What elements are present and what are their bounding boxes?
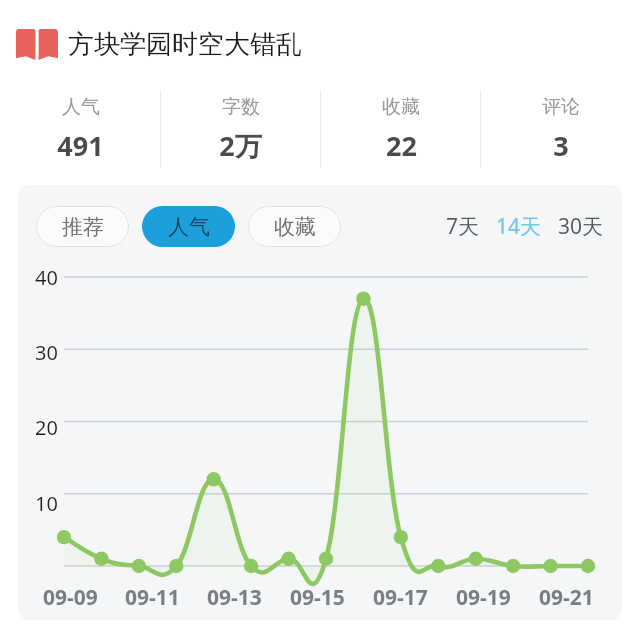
staticText: 人气 (168, 214, 210, 240)
button[interactable]: 字数 (161, 88, 320, 170)
button[interactable]: 收藏 (321, 88, 480, 170)
staticText: 22 (386, 127, 417, 164)
staticText: 评论 (542, 95, 580, 119)
staticText: 09-21 (539, 583, 594, 612)
button[interactable]: 收藏 (248, 206, 341, 247)
button[interactable]: 7天 (444, 206, 482, 247)
button[interactable]: 推荐 (36, 206, 129, 247)
staticText: 20 (35, 414, 58, 441)
staticText: 14天 (496, 212, 542, 241)
staticText: 09-15 (290, 583, 345, 612)
staticText: 3 (553, 127, 569, 164)
staticText: 30 (35, 339, 58, 366)
staticText: 方块学园时空大错乱 (68, 28, 302, 61)
staticText: 09-11 (125, 583, 180, 612)
button[interactable]: 评论 (481, 88, 640, 170)
button[interactable]: 14天 (494, 206, 544, 247)
staticText: 30天 (558, 212, 604, 241)
staticText: 收藏 (382, 95, 420, 119)
staticText: 09-19 (456, 583, 511, 612)
staticText: 7天 (446, 212, 480, 241)
staticText: 10 (35, 490, 58, 517)
staticText: 491 (57, 127, 104, 164)
staticText: 40 (35, 264, 58, 291)
staticText: 09-13 (207, 583, 262, 612)
staticText: 人气 (62, 95, 100, 119)
other: Book (16, 29, 58, 60)
staticText: 收藏 (274, 214, 316, 240)
button[interactable]: 30天 (556, 206, 606, 247)
staticText: 09-09 (43, 583, 98, 612)
button[interactable]: 人气 (0, 88, 160, 170)
staticText: 推荐 (62, 214, 104, 240)
staticText: 字数 (222, 95, 260, 119)
staticText: 09-17 (373, 583, 428, 612)
button[interactable]: 人气 (142, 206, 235, 247)
staticText: 2万 (219, 127, 262, 164)
